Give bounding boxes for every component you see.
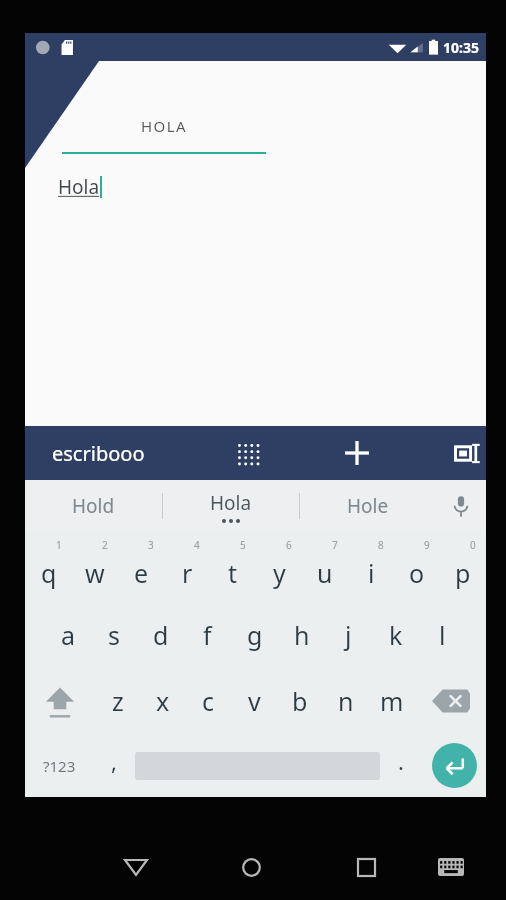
staticText: 2	[102, 538, 108, 552]
button[interactable]: 3	[118, 532, 164, 602]
button[interactable]: Hole	[300, 480, 436, 532]
button[interactable]: Switch keyboard	[424, 834, 478, 900]
button[interactable]: m	[369, 668, 415, 734]
button[interactable]: b	[277, 668, 323, 734]
button[interactable]: Space	[135, 734, 380, 797]
staticText: m	[380, 684, 404, 718]
button[interactable]: Add	[332, 426, 382, 480]
staticText: s	[108, 618, 120, 652]
button[interactable]: Shift	[25, 668, 95, 734]
button[interactable]: Hide keyboard	[78, 834, 194, 900]
button[interactable]: k	[372, 602, 419, 668]
button[interactable]: a	[45, 602, 91, 668]
button[interactable]: Voice input	[436, 480, 486, 532]
staticText: 1	[56, 538, 62, 552]
button[interactable]: 2	[72, 532, 118, 602]
button[interactable]: n	[323, 668, 369, 734]
staticText: ,	[111, 746, 117, 776]
staticText: y	[273, 556, 286, 590]
button[interactable]: s	[91, 602, 137, 668]
staticText: c	[202, 684, 215, 718]
button[interactable]: g	[231, 602, 278, 668]
button[interactable]: 9	[394, 532, 440, 602]
staticText: Hold	[72, 493, 115, 519]
staticText: Hole	[347, 493, 389, 519]
button[interactable]: .	[380, 734, 422, 797]
button[interactable]: Hold	[25, 480, 162, 532]
staticText: .	[398, 746, 404, 776]
button[interactable]: l	[419, 602, 466, 668]
staticText: 8	[378, 538, 384, 552]
staticText: e	[134, 556, 149, 590]
button[interactable]: ,	[93, 734, 135, 797]
staticText: q	[41, 556, 57, 590]
staticText: u	[317, 556, 333, 590]
button[interactable]: 6	[256, 532, 302, 602]
staticText: Hola	[58, 174, 100, 200]
staticText: 0	[470, 538, 476, 552]
staticText: w	[85, 556, 105, 590]
button[interactable]: z	[95, 668, 140, 734]
staticText: p	[455, 556, 471, 590]
button[interactable]: 8	[348, 532, 394, 602]
button[interactable]: 1	[25, 532, 72, 602]
button[interactable]: c	[185, 668, 231, 734]
button[interactable]: ?123	[25, 734, 93, 797]
staticText: a	[61, 618, 76, 652]
staticText: x	[156, 684, 170, 718]
staticText: f	[203, 618, 212, 652]
button[interactable]: x	[140, 668, 185, 734]
button[interactable]: f	[184, 602, 231, 668]
button[interactable]: 5	[210, 532, 256, 602]
button[interactable]: d	[137, 602, 184, 668]
button[interactable]: Apps	[223, 426, 271, 480]
staticText: 6	[286, 538, 292, 552]
button[interactable]: 7	[302, 532, 348, 602]
button[interactable]: escribooo	[52, 440, 145, 467]
button[interactable]: v	[231, 668, 277, 734]
staticText: i	[368, 556, 375, 590]
staticText: ?123	[43, 756, 76, 776]
staticText: 7	[332, 538, 338, 552]
button[interactable]: Enter	[422, 734, 486, 797]
staticText: o	[409, 556, 425, 590]
button[interactable]: Insert text	[450, 426, 486, 480]
button[interactable]: h	[278, 602, 325, 668]
button[interactable]: Backspace	[415, 668, 486, 734]
staticText: b	[292, 684, 308, 718]
button[interactable]: Home	[194, 834, 309, 900]
staticText: h	[294, 618, 310, 652]
staticText: 4	[194, 538, 200, 552]
staticText: l	[439, 618, 446, 652]
button[interactable]: 4	[164, 532, 210, 602]
staticText: r	[182, 556, 193, 590]
staticText: n	[338, 684, 354, 718]
staticText: Hola	[210, 490, 252, 516]
staticText: v	[248, 684, 261, 718]
staticText: z	[112, 684, 124, 718]
staticText: j	[345, 618, 352, 652]
staticText: 10:35	[443, 38, 479, 57]
staticText: 5	[240, 538, 246, 552]
staticText: HOLA	[141, 116, 187, 136]
staticText: k	[389, 618, 403, 652]
staticText: 3	[148, 538, 154, 552]
button[interactable]: j	[325, 602, 372, 668]
staticText: d	[153, 618, 169, 652]
staticText: g	[247, 618, 263, 652]
button[interactable]: Recents	[309, 834, 424, 900]
staticText: t	[228, 556, 238, 590]
button[interactable]: Hola	[163, 480, 299, 532]
staticText: 9	[424, 538, 430, 552]
button[interactable]: 0	[440, 532, 486, 602]
